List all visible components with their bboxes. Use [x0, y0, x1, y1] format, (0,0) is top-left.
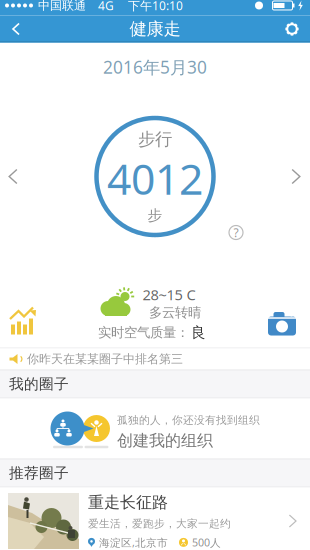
staticText: 4G [98, 0, 114, 13]
staticText: 4012 [107, 150, 203, 206]
staticText: 重走长征路 [88, 492, 168, 512]
staticText: 健康走 [129, 18, 180, 40]
staticText: 2016年5月30 [103, 55, 207, 78]
staticText: ? [233, 224, 238, 240]
staticText: 多云转晴 [149, 304, 201, 321]
button[interactable]: 你昨天在某某圈子中排名第三 [0, 348, 310, 369]
button[interactable]: 帮助 [227, 223, 245, 241]
staticText: 推荐圈子 [9, 464, 69, 482]
staticText: 500人 [192, 535, 221, 549]
staticText: 你昨天在某某圈子中排名第三 [27, 352, 183, 366]
staticText: 良 [191, 323, 206, 341]
staticText: 孤独的人，你还没有找到组织 [117, 414, 260, 427]
staticText: 中国联通 [38, 0, 86, 13]
button[interactable]: 拍照 [266, 308, 298, 336]
button[interactable]: 统计 [8, 306, 38, 336]
staticText: 爱生活，爱跑步，大家一起约 [88, 517, 231, 530]
button[interactable]: 前一天 [2, 164, 26, 188]
button[interactable]: 返回 [0, 15, 34, 42]
staticText: 海淀区,北京市 [99, 535, 168, 549]
button[interactable]: 重走长征路 [0, 487, 310, 550]
staticText: 我的圈子 [9, 375, 69, 393]
staticText: 实时空气质量： [98, 324, 189, 341]
staticText: 28~15 C [142, 285, 195, 304]
button[interactable]: 步行 [94, 115, 216, 237]
staticText: 步行 [138, 128, 172, 150]
staticText: 创建我的组织 [117, 431, 213, 450]
staticText: 下午10:10 [128, 0, 183, 13]
button[interactable]: 孤独的人，你还没有找到组织 [0, 398, 310, 458]
button[interactable]: 设置 [274, 15, 310, 42]
button[interactable]: 后一天 [285, 164, 309, 188]
staticText: 步 [147, 206, 162, 224]
